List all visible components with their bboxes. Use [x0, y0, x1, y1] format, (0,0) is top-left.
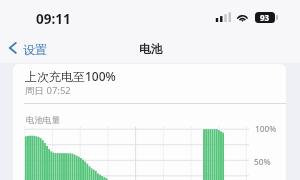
- staticText: 设置: [23, 42, 47, 57]
- button[interactable]: 设置: [4, 37, 56, 61]
- staticText: 电池: [139, 42, 162, 56]
- other: Cellular signal: [215, 12, 231, 22]
- button[interactable]: 上次充电至100%: [13, 64, 286, 103]
- staticText: 周日 07:52: [25, 84, 71, 97]
- staticText: 100%: [255, 123, 277, 134]
- staticText: 09:11: [36, 10, 71, 28]
- staticText: 93: [260, 12, 270, 23]
- other: Wi-Fi: [236, 12, 249, 22]
- staticText: 50%: [254, 156, 271, 167]
- staticText: 电池电量: [26, 115, 60, 126]
- staticText: 上次充电至100%: [25, 68, 116, 84]
